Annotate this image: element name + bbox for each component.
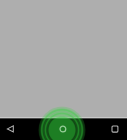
button[interactable]: Home <box>0 0 127 140</box>
